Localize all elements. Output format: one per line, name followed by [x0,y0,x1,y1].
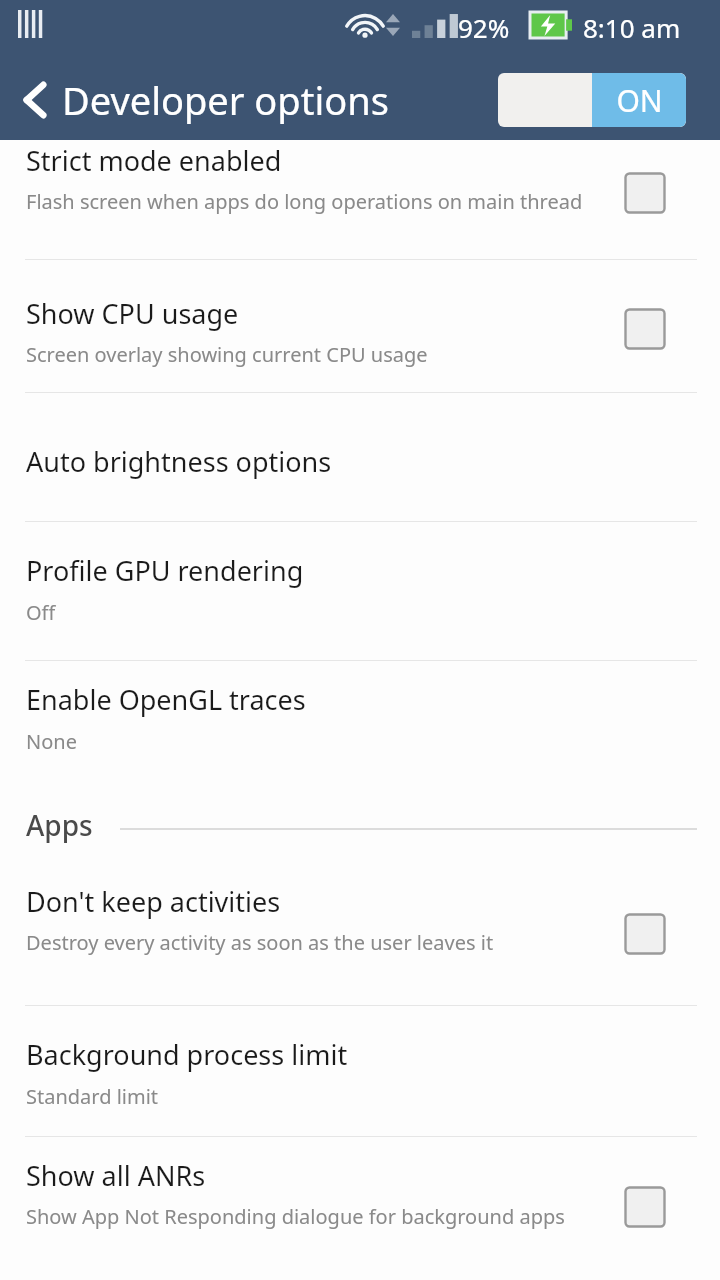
button[interactable]: Developer options on [498,73,686,127]
staticText: Standard limit [26,1083,426,1110]
button[interactable] [0,862,720,1005]
staticText: Show App Not Responding dialogue for bac… [26,1203,566,1230]
button[interactable]: Toggle checkbox [624,172,666,214]
button[interactable]: Toggle checkbox [624,913,666,955]
staticText: Profile GPU rendering [26,552,304,589]
staticText: Auto brightness options [26,443,332,480]
button[interactable] [0,1006,720,1136]
button[interactable]: Toggle checkbox [624,1186,666,1228]
staticText: Off [26,599,326,626]
button[interactable] [0,140,720,259]
staticText: Developer options [62,74,389,126]
button[interactable] [0,260,720,392]
button[interactable] [0,522,720,660]
button[interactable] [0,661,720,790]
button[interactable]: Toggle checkbox [624,308,666,350]
staticText: Flash screen when apps do long operation… [26,188,586,215]
staticText: Enable OpenGL traces [26,681,306,718]
staticText: Screen overlay showing current CPU usage [26,341,586,368]
staticText: Don't keep activities [26,883,281,920]
button[interactable]: Developer options [0,60,470,140]
staticText: 92% [458,10,510,45]
staticText: 8:10 am [583,10,681,45]
staticText: Show CPU usage [26,295,239,332]
staticText: ON [616,80,663,121]
staticText: Apps [26,806,93,844]
button[interactable] [0,1137,720,1280]
staticText: Strict mode enabled [26,142,282,179]
button[interactable] [0,393,720,521]
staticText: Background process limit [26,1036,348,1073]
staticText: Destroy every activity as soon as the us… [26,929,586,956]
staticText: None [26,728,326,755]
staticText: Show all ANRs [26,1157,206,1194]
